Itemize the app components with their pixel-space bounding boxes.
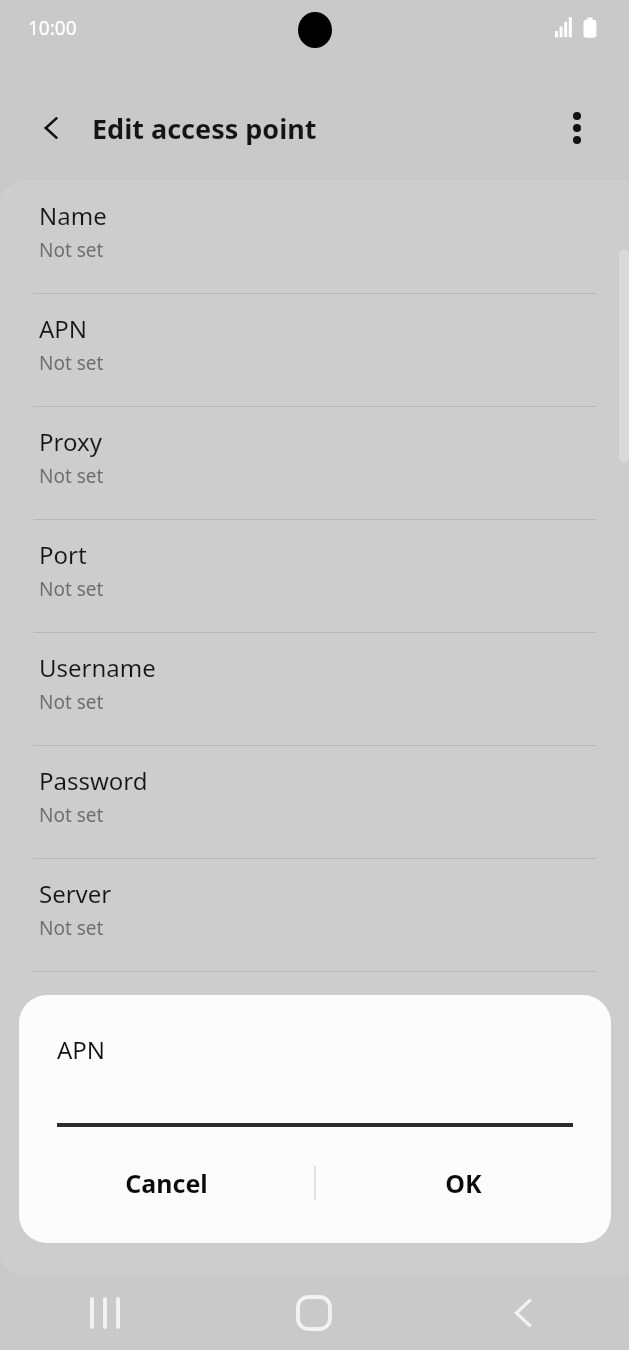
button[interactable]: Proxy: [0, 406, 629, 519]
staticText: Not set: [39, 1028, 104, 1054]
staticText: MMSC: [39, 990, 111, 1023]
staticText: Not set: [39, 350, 104, 376]
button[interactable]: Home: [209, 1275, 419, 1350]
button[interactable]: More options: [547, 98, 607, 158]
staticText: Name: [39, 199, 107, 232]
staticText: Not set: [39, 802, 104, 828]
staticText: Password: [39, 764, 148, 797]
button[interactable]: Server: [0, 858, 629, 971]
button[interactable]: OK: [316, 1145, 611, 1221]
button[interactable]: Username: [0, 632, 629, 745]
staticText: Not set: [39, 463, 104, 489]
staticText: Server: [39, 877, 112, 910]
button[interactable]: MMS proxy: [0, 1084, 629, 1197]
staticText: MMS proxy: [39, 1103, 166, 1136]
staticText: Username: [39, 651, 156, 684]
button[interactable]: Back: [22, 98, 82, 158]
staticText: APN: [39, 312, 88, 345]
staticText: Edit access point: [92, 110, 317, 147]
staticText: 10:00: [28, 15, 77, 41]
button[interactable]: Back: [419, 1275, 629, 1350]
button[interactable]: Cancel: [19, 1145, 314, 1221]
button[interactable]: Recents: [0, 1275, 209, 1350]
staticText: Port: [39, 538, 87, 571]
button[interactable]: Password: [0, 745, 629, 858]
staticText: Not set: [39, 915, 104, 941]
staticText: Cancel: [125, 1166, 208, 1200]
staticText: OK: [445, 1166, 482, 1200]
button[interactable]: MMSC: [0, 971, 629, 1084]
button[interactable]: APN: [0, 293, 629, 406]
staticText: Proxy: [39, 425, 102, 458]
button[interactable]: Name: [0, 180, 629, 293]
staticText: Not set: [39, 237, 104, 263]
staticText: APN: [57, 1033, 106, 1066]
staticText: Not set: [39, 576, 104, 602]
staticText: Not set: [39, 689, 104, 715]
button[interactable]: Port: [0, 519, 629, 632]
